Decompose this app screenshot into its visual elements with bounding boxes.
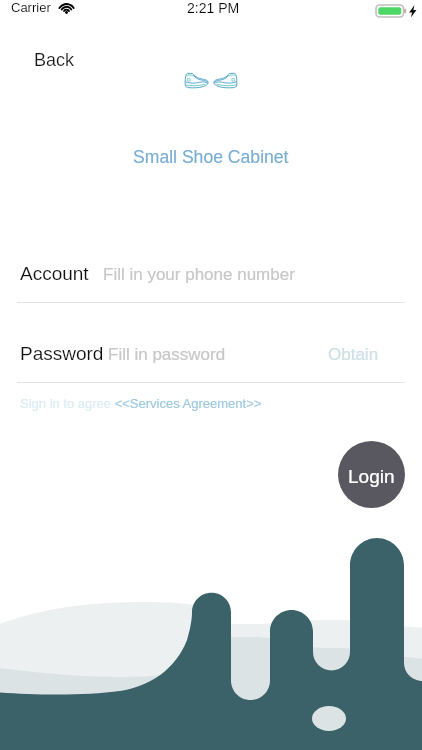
staticText: Account	[20, 263, 89, 284]
staticText: Password	[20, 343, 104, 364]
staticText: Login	[348, 466, 395, 487]
button[interactable]: Login	[338, 441, 405, 508]
staticText: Back	[34, 50, 75, 70]
button[interactable]: Sign in to agree <<Services Agreement>>	[20, 396, 262, 411]
staticText: Sign in to agree <<Services Agreement>>	[20, 396, 262, 411]
staticText: Small Shoe Cabinet	[133, 147, 289, 167]
staticText: Fill in your phone number	[103, 265, 295, 284]
staticText: Fill in password	[108, 345, 226, 364]
staticText: Obtain	[328, 345, 379, 364]
button[interactable]: Obtain	[328, 345, 379, 364]
staticText: Carrier	[11, 0, 51, 15]
staticText: 2:21 PM	[187, 0, 240, 16]
button[interactable]: Back	[26, 46, 83, 74]
